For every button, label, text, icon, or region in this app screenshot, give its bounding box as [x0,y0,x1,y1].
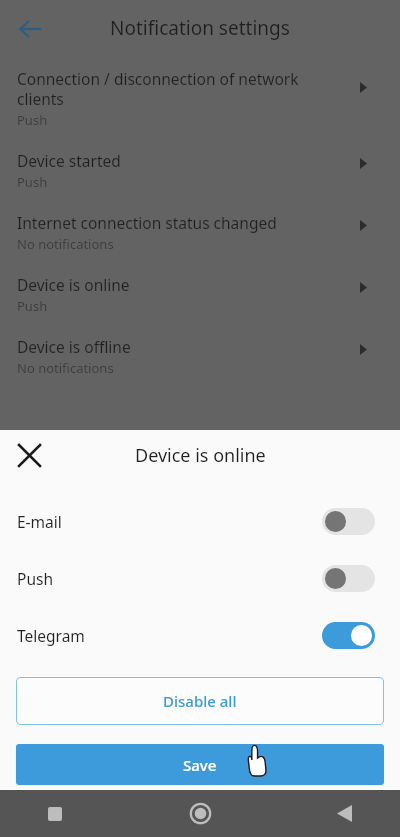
staticText: Push [17,111,48,129]
button[interactable]: Back [267,790,400,837]
staticText: Connection / disconnection of network cl… [17,68,299,109]
staticText: Notification settings [110,15,290,41]
button[interactable]: E-mail [0,493,400,550]
button[interactable]: Home [134,790,267,837]
button[interactable]: Disable all [16,677,384,725]
staticText: No notifications [17,235,114,253]
button[interactable]: Save [16,744,384,785]
staticText: Disable all [163,691,237,711]
button[interactable]: Close [8,434,50,476]
staticText: Internet connection status changed [17,212,277,233]
staticText: Device is offline [17,336,131,357]
staticText: Push [17,297,48,315]
staticText: Push [17,173,48,191]
button[interactable]: Telegram [0,607,400,664]
button[interactable]: Device is online [0,263,400,325]
button[interactable]: Device started [0,139,400,201]
staticText: Device is online [17,274,130,295]
button[interactable]: Connection / disconnection of network cl… [0,57,400,139]
button[interactable]: Recents [0,790,134,837]
staticText: Device is online [135,443,266,468]
button[interactable]: Back [10,9,50,49]
staticText: No notifications [17,359,114,377]
staticText: Device started [17,150,121,171]
staticText: Push [17,568,53,589]
staticText: Telegram [17,625,85,646]
staticText: E-mail [17,511,62,532]
button[interactable]: Internet connection status changed [0,201,400,263]
button[interactable]: Push [0,550,400,607]
staticText: Save [183,755,217,775]
button[interactable]: Device is offline [0,325,400,387]
